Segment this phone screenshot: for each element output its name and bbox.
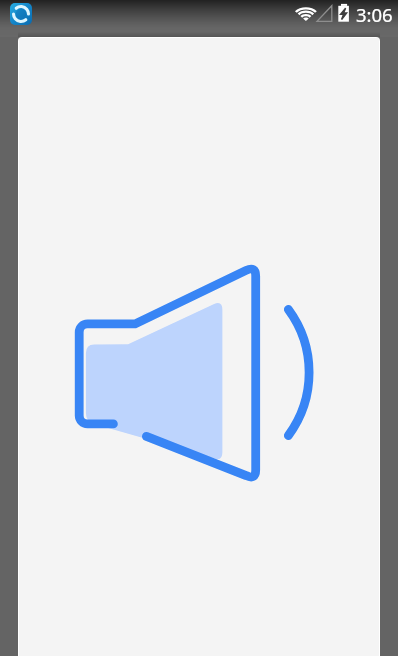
button[interactable]: App notification [10,3,32,25]
staticText: 3:06 [356,2,393,27]
